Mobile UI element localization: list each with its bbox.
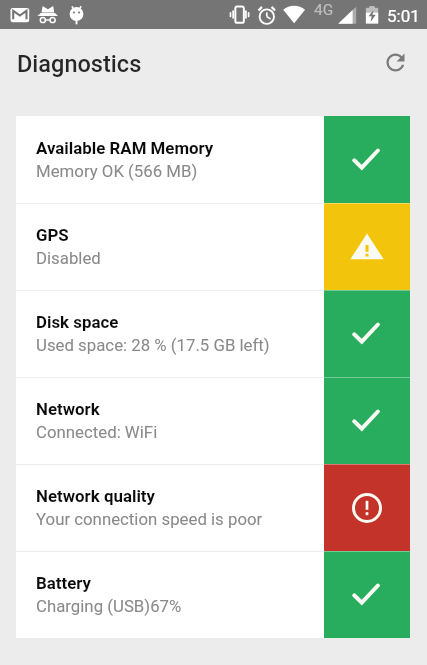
staticText: Disk space [36, 312, 119, 332]
staticText: Connected: WiFi [36, 422, 158, 442]
staticText: Available RAM Memory [36, 138, 214, 158]
staticText: Network quality [36, 486, 156, 506]
button[interactable]: Available RAM Memory [16, 116, 410, 203]
staticText: 4G [314, 1, 334, 19]
button[interactable]: Network [16, 377, 410, 464]
staticText: Diagnostics [17, 50, 142, 78]
button[interactable]: GPS [16, 203, 410, 290]
staticText: Disabled [36, 248, 101, 268]
staticText: Charging (USB)67% [36, 596, 182, 616]
staticText: Battery [36, 573, 92, 593]
staticText: Your connection speed is poor [36, 509, 263, 529]
staticText: Used space: 28 % (17.5 GB left) [36, 335, 270, 355]
button[interactable]: Network quality [16, 464, 410, 551]
staticText: Network [36, 399, 100, 419]
staticText: GPS [36, 225, 69, 245]
staticText: Memory OK (566 MB) [36, 161, 198, 181]
button[interactable]: Refresh [382, 49, 409, 76]
staticText: 5:01 [387, 6, 420, 26]
button[interactable]: Disk space [16, 290, 410, 377]
button[interactable]: Battery [16, 551, 410, 638]
